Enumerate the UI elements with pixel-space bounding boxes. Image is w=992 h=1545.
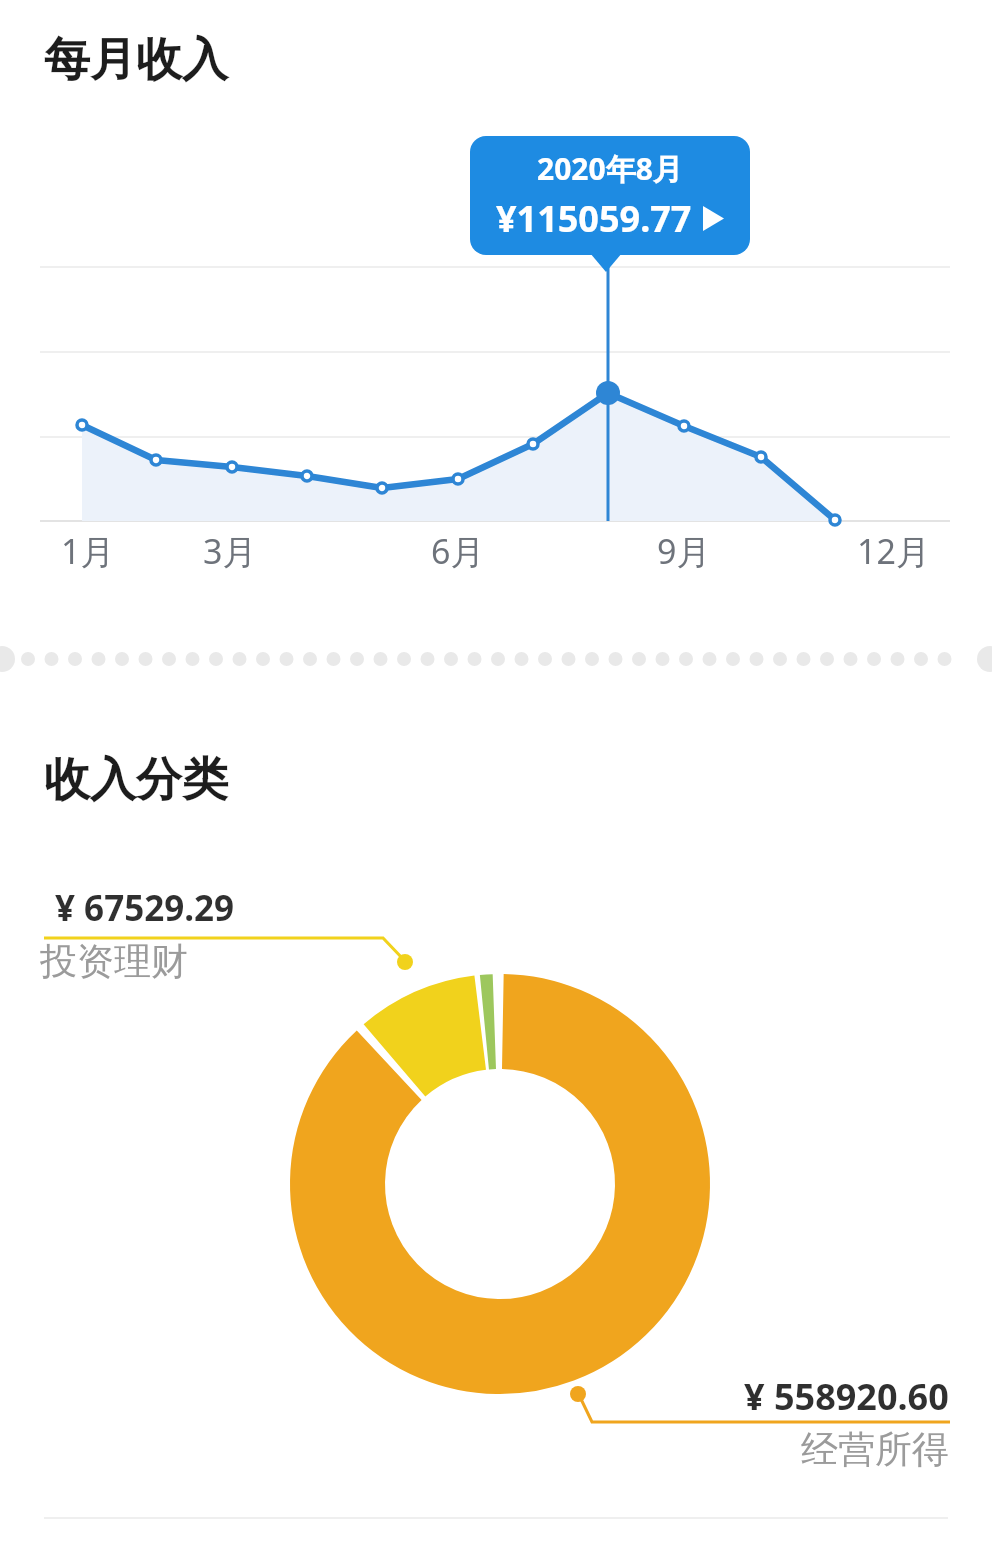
staticText: ¥115059.77 xyxy=(496,194,692,243)
staticText: 6月 xyxy=(431,528,485,570)
staticText: ¥ 67529.29 xyxy=(55,884,235,932)
staticText: 3月 xyxy=(203,528,257,570)
staticText: 1月 xyxy=(61,528,115,570)
staticText: 9月 xyxy=(657,528,711,570)
staticText: 每月收入 xyxy=(44,31,228,89)
staticText: 投资理财 xyxy=(40,938,188,985)
staticText: 经营所得 xyxy=(801,1426,949,1473)
button[interactable]: 2020年8月 xyxy=(470,136,750,255)
staticText: 2020年8月 xyxy=(537,148,683,189)
staticText: 12月 xyxy=(857,528,930,570)
staticText: 收入分类 xyxy=(44,751,228,809)
staticText: ¥ 558920.60 xyxy=(744,1372,949,1421)
